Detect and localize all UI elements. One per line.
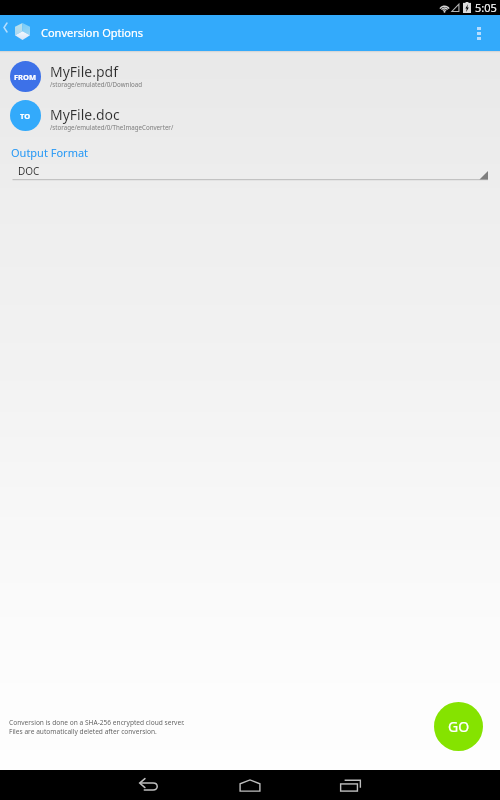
button[interactable]: Back <box>128 770 168 800</box>
button[interactable]: More options <box>466 16 492 51</box>
staticText: DOC <box>18 164 40 178</box>
button[interactable]: Home <box>230 770 270 800</box>
button[interactable]: FROM <box>0 61 500 92</box>
button[interactable]: Navigate up <box>0 15 14 49</box>
staticText: Output Format <box>11 145 89 160</box>
staticText: Conversion is done on a SHA-256 encrypte… <box>9 718 185 727</box>
staticText: MyFile.pdf <box>50 62 119 81</box>
staticText: GO <box>448 717 470 736</box>
button[interactable]: Recent apps <box>330 770 370 800</box>
button[interactable]: GO <box>434 702 483 751</box>
staticText: /storage/emulated/0/Download <box>50 80 143 88</box>
staticText: Conversion Options <box>41 25 144 40</box>
staticText: FROM <box>14 72 37 82</box>
staticText: /storage/emulated/0/TheImageConverter/ <box>50 123 174 131</box>
staticText: 5:05 <box>475 0 497 15</box>
staticText: Files are automatically deleted after co… <box>9 727 157 736</box>
staticText: TO <box>20 111 31 121</box>
button[interactable]: TO <box>0 100 500 131</box>
staticText: MyFile.doc <box>50 105 120 124</box>
button[interactable]: DOC <box>0 163 500 185</box>
